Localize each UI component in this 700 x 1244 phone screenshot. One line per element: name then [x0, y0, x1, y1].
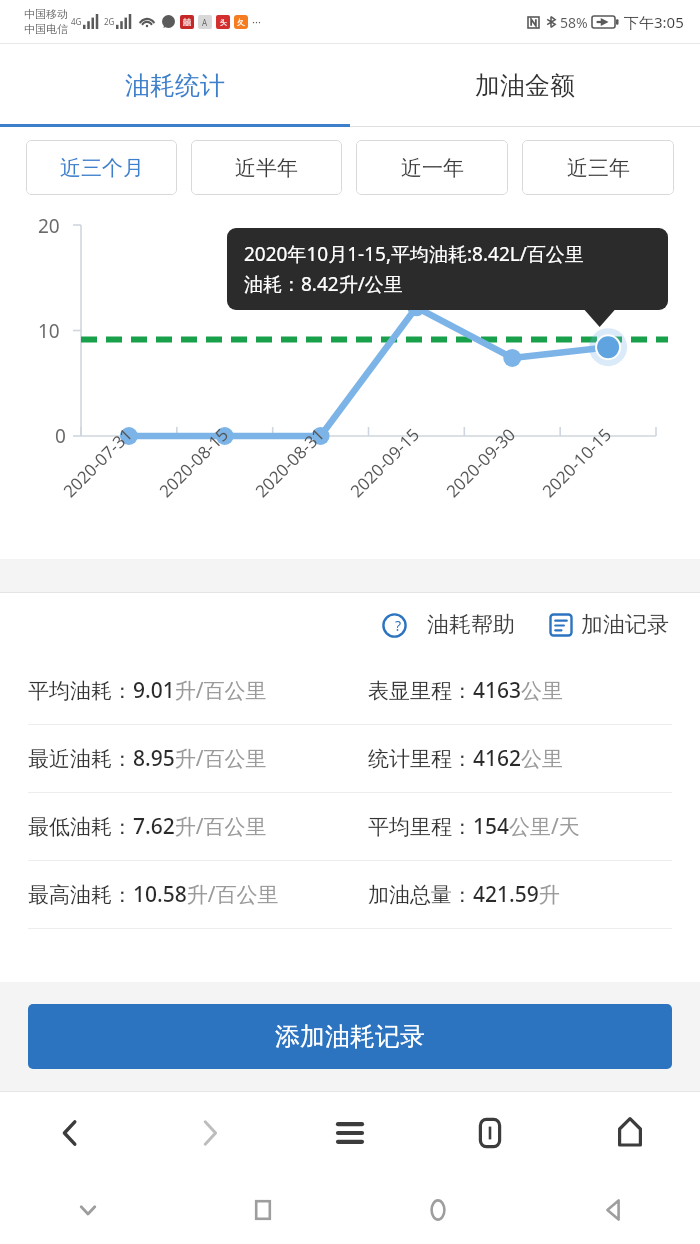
- button[interactable]: 近一年: [356, 140, 508, 195]
- button[interactable]: Back: [0, 1091, 140, 1175]
- button[interactable]: Tabs: [420, 1091, 560, 1175]
- staticText: 油耗统计: [125, 70, 225, 101]
- button[interactable]: Home: [350, 1175, 525, 1244]
- staticText: 10: [38, 318, 60, 344]
- staticText: 统计里程：4162公里: [368, 744, 700, 773]
- staticText: 2020-08-15: [154, 423, 233, 502]
- button[interactable]: ?: [378, 605, 519, 645]
- staticText: 油耗：8.42升/公里: [244, 271, 403, 297]
- staticText: 2020-10-15: [537, 423, 616, 502]
- staticText: 2020-08-31: [250, 423, 329, 502]
- button[interactable]: 近三年: [522, 140, 674, 195]
- staticText: 中国电信: [24, 22, 68, 36]
- staticText: 平均里程：154公里/天: [368, 812, 700, 841]
- staticText: 0: [55, 423, 66, 449]
- staticText: 夂: [237, 17, 245, 27]
- button[interactable]: Menu: [280, 1091, 420, 1175]
- staticText: 油耗帮助: [427, 611, 515, 639]
- staticText: 最高油耗：10.58升/百公里: [28, 880, 368, 909]
- staticText: 中国移动: [24, 7, 68, 21]
- staticText: 近三年: [567, 155, 630, 181]
- staticText: ···: [252, 14, 261, 29]
- staticText: 加油记录: [581, 611, 669, 639]
- button[interactable]: 添加油耗记录: [28, 1004, 672, 1069]
- staticText: 58%: [560, 13, 588, 32]
- staticText: 近一年: [401, 155, 464, 181]
- staticText: 加油总量：421.59升: [368, 880, 700, 909]
- staticText: 表显里程：4163公里: [368, 676, 700, 705]
- staticText: 添加油耗记录: [275, 1021, 425, 1052]
- staticText: 最近油耗：8.95升/百公里: [28, 744, 368, 773]
- button[interactable]: 近半年: [191, 140, 342, 195]
- button[interactable]: Forward: [140, 1091, 280, 1175]
- staticText: 2020-09-15: [345, 423, 424, 502]
- staticText: 头: [220, 18, 227, 27]
- button[interactable]: Home: [560, 1091, 700, 1175]
- button[interactable]: 近三个月: [26, 140, 177, 195]
- button[interactable]: Hide keyboard: [0, 1175, 175, 1244]
- staticText: 2020-07-31: [58, 423, 137, 502]
- staticText: 2020年10月1-15,平均油耗:8.42L/百公里: [244, 241, 584, 267]
- staticText: ?: [395, 616, 402, 635]
- staticText: 近三个月: [60, 155, 144, 181]
- staticText: 加油金额: [475, 70, 575, 101]
- staticText: 2020-09-30: [441, 423, 520, 502]
- button[interactable]: 油耗统计: [0, 44, 350, 127]
- staticText: 平均油耗：9.01升/百公里: [28, 676, 368, 705]
- button[interactable]: Recents: [175, 1175, 350, 1244]
- staticText: 囍: [183, 17, 191, 27]
- staticText: 20: [38, 213, 60, 239]
- button[interactable]: 加油金额: [350, 44, 700, 127]
- staticText: 2G: [104, 16, 115, 27]
- staticText: A: [202, 17, 208, 28]
- staticText: 近半年: [235, 155, 298, 181]
- staticText: 下午3:05: [624, 12, 684, 32]
- button[interactable]: 加油记录: [545, 605, 673, 645]
- button[interactable]: Back: [525, 1175, 700, 1244]
- staticText: 4G: [71, 16, 82, 27]
- staticText: 最低油耗：7.62升/百公里: [28, 812, 368, 841]
